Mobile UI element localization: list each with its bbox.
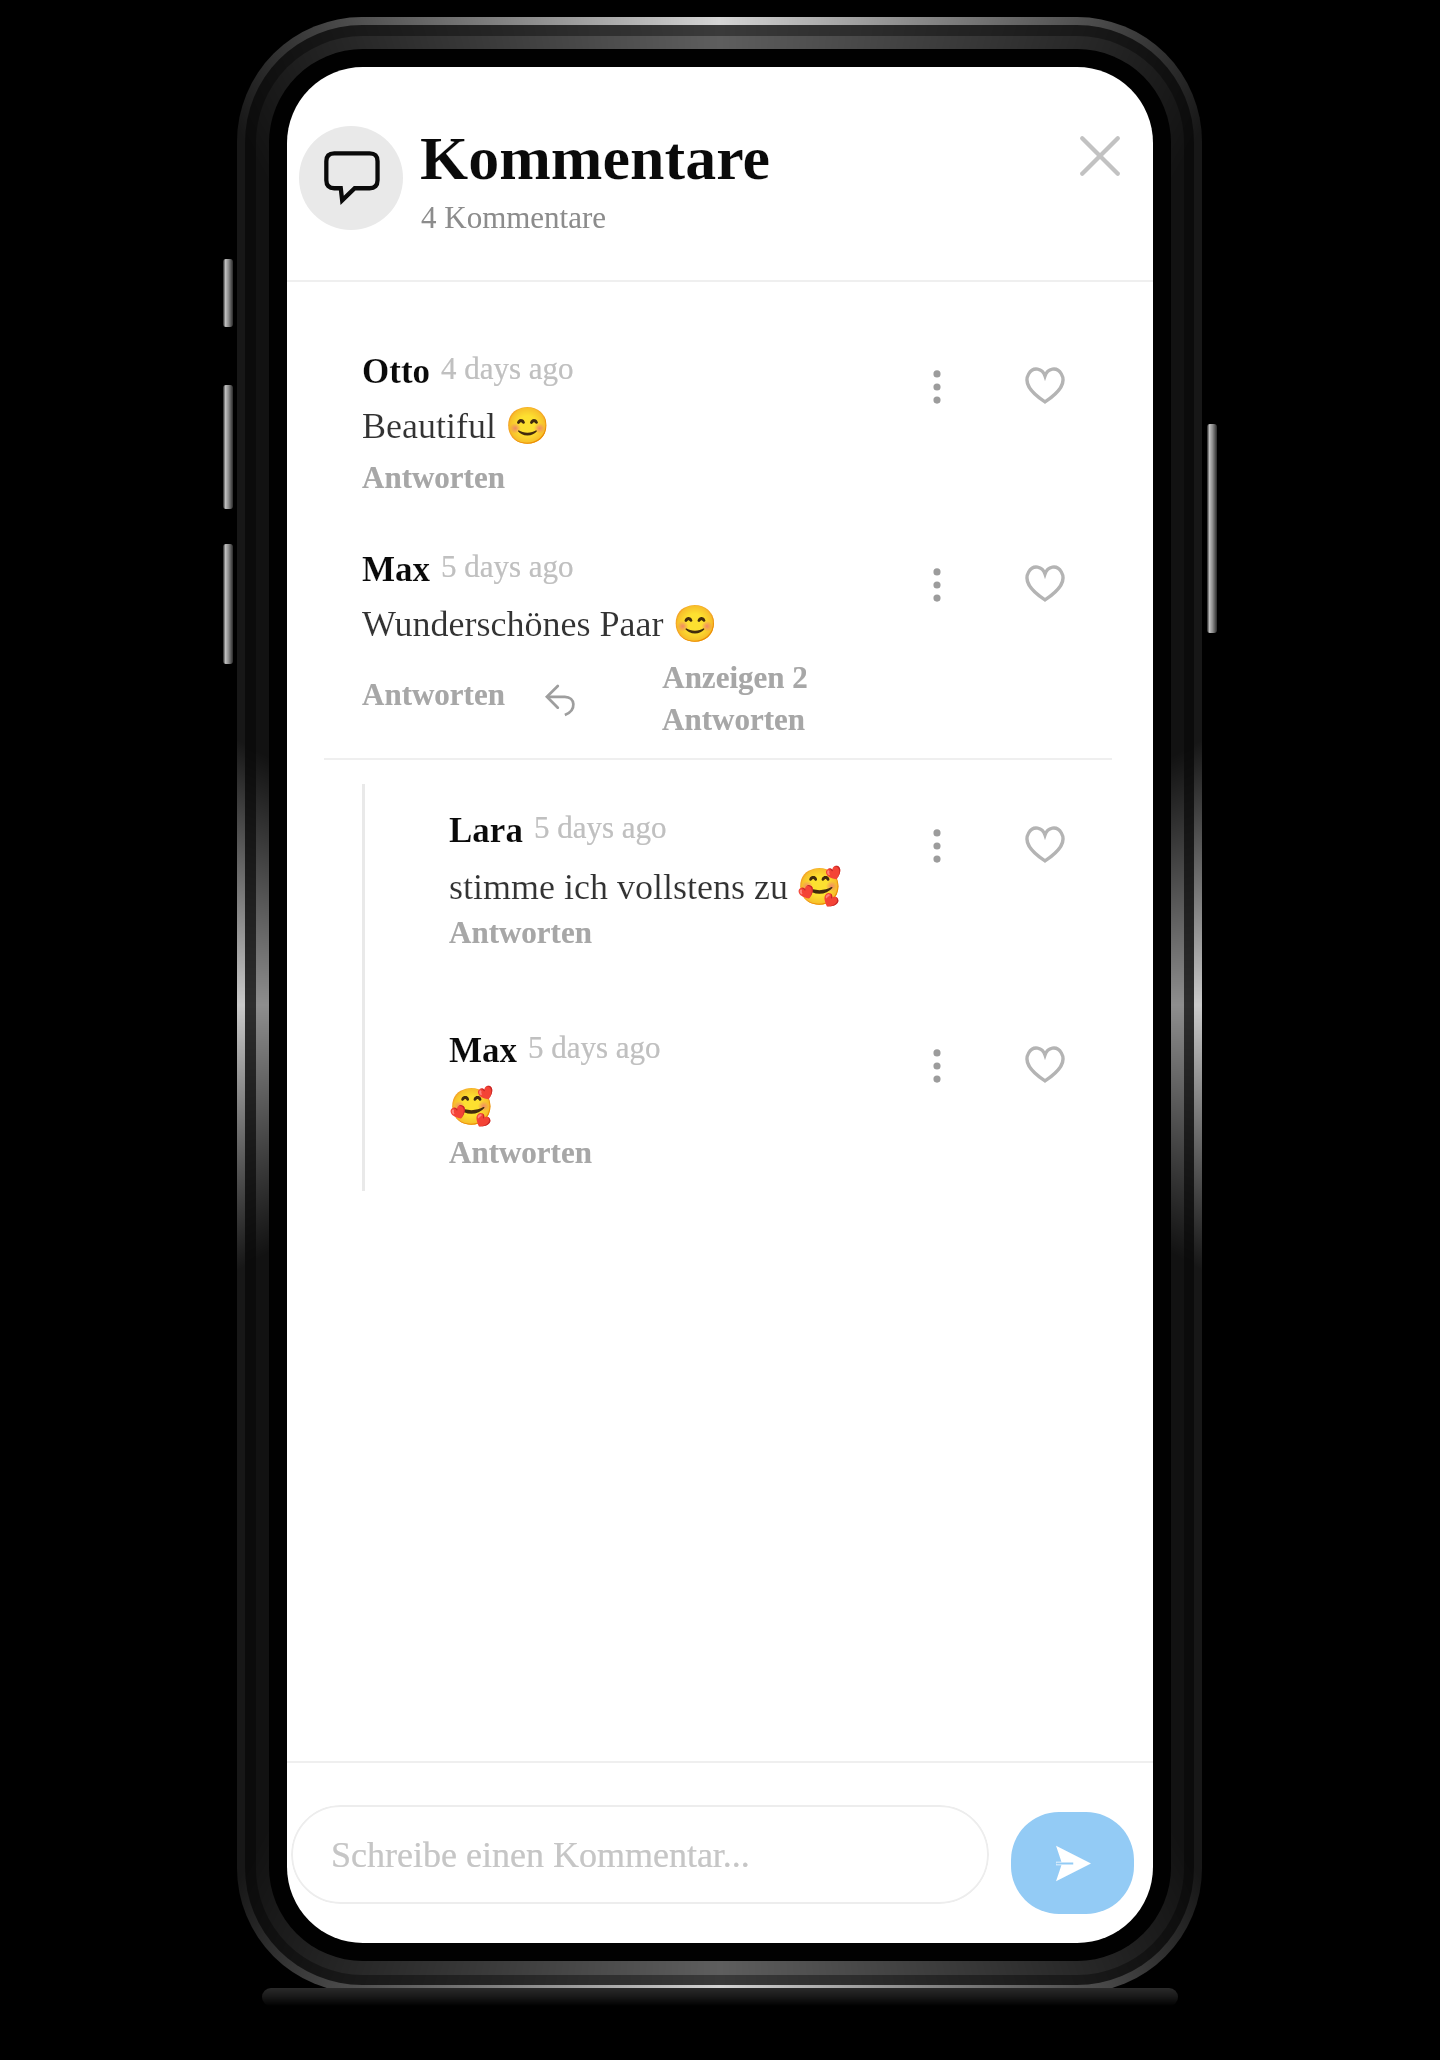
staticText: 🥰	[449, 1086, 494, 1128]
staticText: 5 days ago	[441, 549, 574, 583]
button[interactable]: Send	[1011, 1812, 1134, 1914]
button[interactable]: Like	[1015, 555, 1074, 614]
staticText: Antworten	[449, 915, 592, 949]
staticText: Lara	[449, 811, 523, 850]
staticText: Otto	[362, 352, 431, 391]
button[interactable]: More options	[907, 816, 966, 875]
staticText: Antworten	[362, 677, 505, 711]
staticText: 4 days ago	[441, 351, 574, 385]
staticText: Wunderschönes Paar 😊	[362, 603, 718, 645]
staticText: Max	[362, 550, 431, 589]
staticText: Schreibe einen Kommentar...	[331, 1835, 750, 1875]
staticText: stimme ich vollstens zu 🥰	[449, 866, 842, 908]
button[interactable]: Close	[1064, 120, 1136, 192]
button[interactable]: Like	[1015, 1036, 1074, 1095]
button[interactable]: More options	[907, 357, 966, 416]
staticText: 5 days ago	[534, 810, 667, 844]
button[interactable]: Like	[1015, 816, 1074, 875]
staticText: Max	[449, 1031, 518, 1070]
button[interactable]: Anzeigen 2	[662, 660, 812, 744]
button[interactable]: Antworten	[362, 677, 505, 711]
staticText: Anzeigen 2	[662, 660, 808, 694]
button[interactable]: Antworten	[449, 915, 592, 949]
staticText: Beautiful 😊	[362, 405, 550, 447]
button[interactable]: Antworten	[362, 460, 505, 494]
staticText: Antworten	[662, 702, 805, 736]
button[interactable]: Antworten	[449, 1135, 592, 1169]
button[interactable]: Comments	[299, 126, 403, 230]
staticText: 5 days ago	[528, 1030, 661, 1064]
button[interactable]: Schreibe einen Kommentar...	[291, 1805, 989, 1904]
staticText: Kommentare	[420, 124, 771, 193]
staticText: 4 Kommentare	[421, 200, 607, 234]
button[interactable]: Reply	[545, 684, 577, 716]
staticText: Antworten	[362, 460, 505, 494]
button[interactable]: Like	[1015, 357, 1074, 416]
staticText: Antworten	[449, 1135, 592, 1169]
button[interactable]: More options	[907, 555, 966, 614]
button[interactable]: More options	[907, 1036, 966, 1095]
